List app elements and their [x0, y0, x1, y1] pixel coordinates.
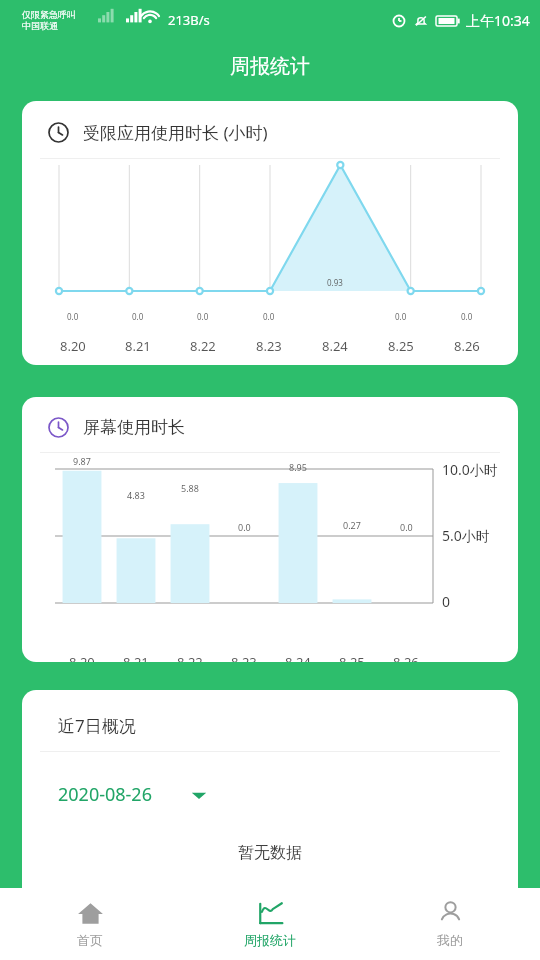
button[interactable]: 2020-08-26 [58, 782, 208, 807]
staticText: 中国联通 [22, 20, 58, 31]
staticText: 213B/s [168, 11, 210, 29]
staticText: 我的 [437, 932, 463, 948]
button[interactable]: 首页 [0, 888, 180, 960]
staticText: 8.24 [285, 653, 311, 662]
staticText: 10.0小时 [442, 460, 498, 479]
staticText: 2020-08-26 [58, 782, 152, 807]
staticText: 周报统计 [244, 932, 296, 948]
staticText: 8.24 [322, 337, 348, 355]
staticText: 8.25 [339, 653, 365, 662]
staticText: 8.20 [69, 653, 95, 662]
staticText: 0.0 [395, 311, 407, 322]
staticText: 9.87 [73, 455, 91, 467]
staticText: 0.27 [343, 519, 361, 531]
staticText: 8.21 [123, 653, 149, 662]
staticText: 受限应用使用时长 (小时) [83, 121, 268, 144]
staticText: 0.0 [461, 311, 473, 322]
other: Select date [190, 786, 208, 804]
staticText: 8.21 [125, 337, 151, 355]
staticText: 近7日概况 [58, 714, 136, 737]
staticText: 上午10:34 [466, 11, 530, 30]
staticText: 8.20 [60, 337, 86, 355]
staticText: 0.0 [238, 521, 251, 533]
staticText: 5.0小时 [442, 526, 490, 545]
staticText: 仅限紧急呼叫 [22, 9, 76, 20]
staticText: 屏幕使用时长 [83, 417, 185, 438]
staticText: 0.93 [327, 277, 343, 288]
staticText: 8.26 [393, 653, 419, 662]
staticText: 0.0 [400, 521, 413, 533]
staticText: 8.22 [190, 337, 216, 355]
staticText: 8.95 [289, 461, 307, 473]
button[interactable]: 屏幕使用时长 [22, 397, 518, 662]
staticText: 0.0 [67, 311, 79, 322]
staticText: 周报统计 [230, 54, 310, 79]
staticText: 0.0 [132, 311, 144, 322]
staticText: 0 [442, 592, 451, 611]
staticText: 0.0 [197, 311, 209, 322]
button[interactable]: 周报统计 [180, 888, 360, 960]
button[interactable]: 我的 [360, 888, 540, 960]
staticText: 暂无数据 [238, 843, 302, 863]
staticText: 5.88 [181, 482, 199, 494]
staticText: 8.26 [454, 337, 480, 355]
staticText: 0.0 [263, 311, 275, 322]
staticText: 8.25 [388, 337, 414, 355]
staticText: 首页 [77, 932, 103, 948]
staticText: 8.23 [231, 653, 257, 662]
staticText: 8.22 [177, 653, 203, 662]
staticText: 8.23 [256, 337, 282, 355]
button[interactable]: 受限应用使用时长 (小时) [22, 101, 518, 365]
staticText: 4.83 [127, 489, 145, 501]
